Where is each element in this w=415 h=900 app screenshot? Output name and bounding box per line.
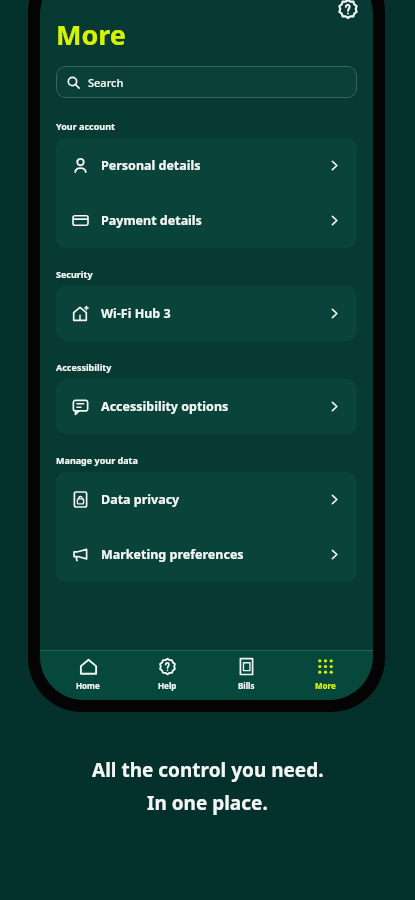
staticText: Marketing preferences — [101, 546, 328, 563]
staticText: Manage your data — [56, 454, 138, 466]
button[interactable]: Search — [56, 66, 357, 98]
button[interactable]: Data privacy — [56, 472, 357, 527]
staticText: All the control you need. — [92, 757, 324, 783]
button[interactable]: Marketing preferences — [56, 527, 357, 582]
staticText: Accessibility options — [101, 398, 328, 415]
staticText: Security — [56, 268, 93, 280]
staticText: More — [315, 680, 336, 691]
button[interactable]: Personal details — [56, 138, 357, 193]
button[interactable]: Help — [136, 657, 198, 691]
staticText: Wi-Fi Hub 3 — [101, 305, 328, 322]
staticText: Personal details — [101, 157, 328, 174]
button[interactable]: Accessibility options — [56, 379, 357, 434]
staticText: Bills — [238, 680, 255, 691]
staticText: Data privacy — [101, 491, 328, 508]
button[interactable]: Bills — [215, 657, 277, 691]
button[interactable]: Help — [337, 0, 359, 20]
staticText: More — [56, 16, 126, 53]
staticText: Your account — [56, 120, 115, 132]
button[interactable]: Wi-Fi Hub 3 — [56, 286, 357, 341]
staticText: Help — [158, 680, 177, 691]
staticText: Home — [76, 680, 100, 691]
staticText: Accessibility — [56, 361, 112, 373]
staticText: Search — [88, 75, 124, 90]
button[interactable]: Home — [57, 657, 119, 691]
button[interactable]: More — [294, 657, 356, 691]
button[interactable]: Payment details — [56, 193, 357, 248]
staticText: Payment details — [101, 212, 328, 229]
staticText: In one place. — [147, 790, 268, 816]
